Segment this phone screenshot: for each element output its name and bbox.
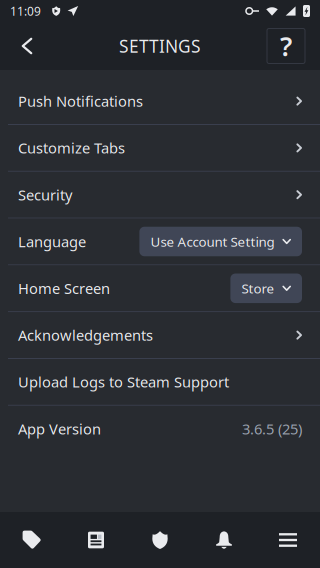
staticText: Home Screen [18,279,110,298]
button[interactable]: Store [230,273,302,303]
button[interactable]: Acknowledgements [0,312,320,358]
staticText: Use Account Setting [150,233,274,250]
button[interactable]: Upload Logs to Steam Support [0,359,320,405]
button[interactable]: Use Account Setting [139,227,302,256]
button[interactable]: Customize Tabs [0,125,320,171]
staticText: ? [280,28,292,64]
button[interactable]: Notifications [192,512,256,568]
button[interactable]: Security [0,172,320,218]
button[interactable]: More [256,512,320,568]
staticText: App Version [18,419,101,438]
button[interactable]: Help [267,28,305,63]
button[interactable]: Back [0,22,54,70]
staticText: Security [18,185,72,204]
staticText: 3.6.5 (25) [242,419,302,438]
staticText: Language [18,232,86,251]
staticText: SETTINGS [119,34,201,57]
staticText: Acknowledgements [18,325,153,345]
button[interactable]: Store [0,512,64,568]
staticText: Push Notifications [18,91,143,111]
button[interactable]: Steam Guard [128,512,192,568]
staticText: 11:09 [10,3,41,19]
staticText: Upload Logs to Steam Support [18,372,229,392]
staticText: Customize Tabs [18,138,125,158]
button[interactable]: News [64,512,128,568]
button[interactable]: Push Notifications [0,78,320,124]
staticText: Store [241,279,274,297]
